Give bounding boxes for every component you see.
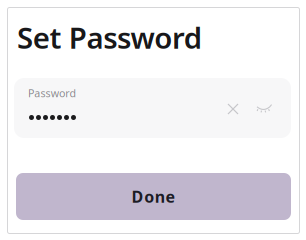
staticText: Done (132, 186, 175, 207)
button[interactable]: Clear password (221, 97, 245, 121)
button[interactable]: Done (16, 173, 291, 220)
staticText: Password (28, 86, 76, 100)
staticText: Set Password (17, 18, 202, 57)
button[interactable]: Show password (252, 97, 276, 121)
